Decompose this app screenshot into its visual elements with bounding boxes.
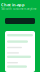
staticText: Chat in-app bbox=[1, 2, 25, 7]
staticText: Talk with customers anytime bbox=[1, 7, 37, 11]
